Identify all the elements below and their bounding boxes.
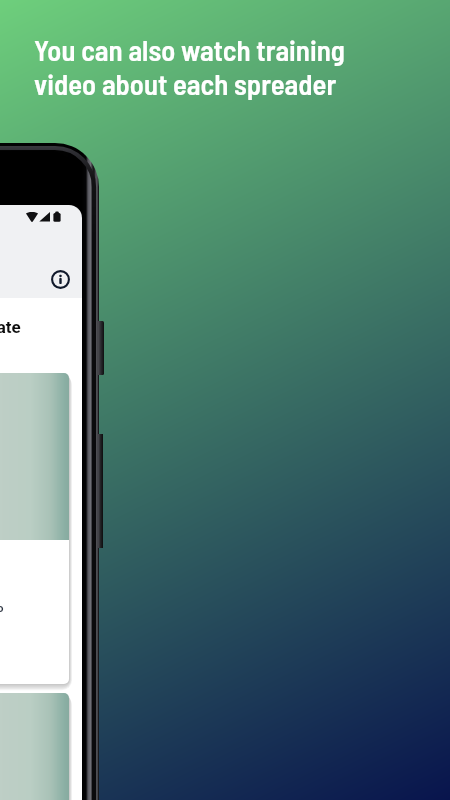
button[interactable]: Info (46, 265, 74, 293)
button[interactable]: Watch video (0, 373, 69, 684)
button[interactable] (0, 693, 69, 800)
staticText: Calibrate (0, 317, 21, 337)
staticText: video about each spreader (34, 66, 337, 100)
staticText: You can also watch training (34, 32, 345, 66)
staticText: Watch video (0, 602, 4, 615)
